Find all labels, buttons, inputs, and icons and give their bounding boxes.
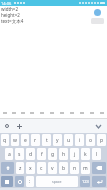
staticText: c [40, 165, 43, 172]
button[interactable]: n [70, 162, 79, 174]
button[interactable]: 123 [80, 176, 90, 187]
button[interactable]: c [37, 162, 46, 174]
staticText: b [62, 165, 66, 172]
button[interactable]: Format tool [47, 108, 57, 118]
staticText: u [67, 137, 71, 144]
button[interactable]: e [21, 134, 29, 146]
button[interactable]: Format tool [0, 108, 9, 118]
button[interactable]: Format tool [87, 108, 97, 118]
staticText: 123 [82, 179, 89, 184]
button[interactable]: Format tool [97, 108, 107, 118]
button[interactable]: : [26, 176, 34, 187]
staticText: g [51, 151, 55, 158]
button[interactable] [1, 162, 14, 174]
staticText: d [29, 151, 33, 158]
button[interactable]: s [15, 148, 24, 160]
button[interactable] [92, 176, 106, 187]
staticText: k [84, 151, 87, 158]
staticText: space [52, 179, 62, 184]
button[interactable] [15, 176, 24, 187]
staticText: x [29, 165, 32, 172]
staticText: j [74, 151, 76, 158]
staticText: text=文本4 [1, 18, 24, 24]
button[interactable]: Hide keyboard [90, 119, 107, 133]
button[interactable]: Format tool [18, 108, 27, 118]
button[interactable]: x [26, 162, 35, 174]
staticText: i [79, 137, 81, 144]
button[interactable]: f [37, 148, 46, 160]
staticText: : [29, 178, 31, 185]
staticText: height=2 [1, 12, 20, 18]
staticText: e [24, 137, 27, 144]
button[interactable]: b [59, 162, 68, 174]
button[interactable]: o [86, 134, 95, 146]
button[interactable] [92, 162, 106, 174]
button[interactable]: q [1, 134, 9, 146]
button[interactable]: Format tool [67, 108, 77, 118]
button[interactable]: u [64, 134, 73, 146]
button[interactable] [1, 176, 13, 187]
button[interactable]: y [53, 134, 62, 146]
button[interactable]: j [70, 148, 79, 160]
staticText: z [19, 165, 22, 172]
button[interactable]: Split keyboard [13, 119, 26, 133]
button[interactable]: k [81, 148, 90, 160]
button[interactable]: space [36, 176, 78, 187]
button[interactable]: Keyboard settings [0, 119, 13, 133]
button[interactable]: w [11, 134, 19, 146]
staticText: w [13, 137, 17, 144]
button[interactable]: i [75, 134, 84, 146]
staticText: p [100, 137, 104, 144]
button[interactable]: g [48, 148, 57, 160]
staticText: r [34, 137, 37, 144]
button[interactable]: d [26, 148, 35, 160]
button[interactable]: Format tool [37, 108, 47, 118]
staticText: t [46, 137, 48, 144]
staticText: n [73, 165, 77, 172]
staticText: s [18, 151, 21, 158]
staticText: o [89, 137, 93, 144]
staticText: width=2 [1, 6, 19, 12]
button[interactable]: m [81, 162, 90, 174]
button[interactable]: p [97, 134, 106, 146]
button[interactable]: Format tool [27, 108, 37, 118]
button[interactable]: Format tool [77, 108, 87, 118]
staticText: y [56, 137, 59, 144]
button[interactable]: Format tool [57, 108, 67, 118]
staticText: q [3, 137, 7, 144]
staticText: f [41, 151, 43, 158]
button[interactable]: l [92, 148, 101, 160]
button[interactable]: r [31, 134, 40, 146]
staticText: l [96, 151, 98, 158]
staticText: a [8, 151, 11, 158]
staticText: h [62, 151, 66, 158]
staticText: 14:06 [1, 1, 12, 6]
button[interactable]: h [59, 148, 68, 160]
staticText: v [51, 165, 54, 172]
button[interactable]: v [48, 162, 57, 174]
button[interactable]: a [5, 148, 13, 160]
button[interactable]: Format tool [9, 108, 18, 118]
staticText: m [83, 165, 88, 172]
button[interactable]: z [16, 162, 24, 174]
button[interactable]: t [42, 134, 51, 146]
